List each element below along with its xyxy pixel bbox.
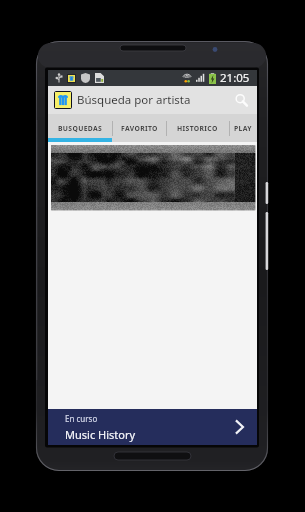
button[interactable]: Buscar [229,88,253,112]
staticText: En curso [65,413,98,424]
staticText: Búsqueda por artista [77,92,191,108]
staticText: 21:05 [220,70,250,86]
button[interactable]: En curso [48,409,257,445]
staticText: Music History [65,427,136,442]
button[interactable]: FAVORITO [112,114,166,142]
button[interactable]: Siguiente [221,409,257,445]
staticText: HISTORICO [177,124,218,133]
staticText: PLAY [234,124,252,133]
staticText: BUSQUEDAS [58,124,103,133]
staticText: FAVORITO [121,124,158,133]
button[interactable]: PLAY [229,114,257,142]
button[interactable]: HISTORICO [166,114,229,142]
button[interactable]: BUSQUEDAS [48,114,112,142]
